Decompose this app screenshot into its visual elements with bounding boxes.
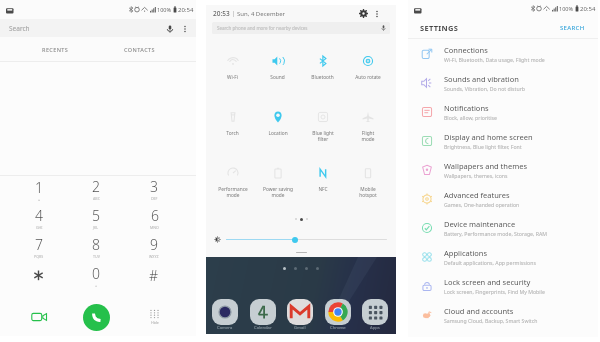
- button[interactable]: Bluetooth: [300, 48, 345, 104]
- button[interactable]: Apps: [362, 299, 388, 331]
- staticText: 8: [92, 235, 100, 254]
- button[interactable]: 5: [67, 204, 125, 233]
- staticText: #: [149, 266, 159, 285]
- staticText: NFC: [318, 186, 328, 193]
- button[interactable]: 4: [10, 204, 67, 233]
- staticText: Device maintenance: [444, 219, 516, 229]
- button[interactable]: RECENTS: [13, 37, 97, 61]
- staticText: Notifications: [444, 103, 489, 113]
- button[interactable]: 6: [125, 204, 183, 233]
- button[interactable]: Camera: [212, 299, 238, 331]
- button[interactable]: Display and home screen: [408, 126, 598, 155]
- staticText: Search phone and more for nearby devices: [217, 25, 308, 31]
- button[interactable]: Video call: [10, 298, 67, 336]
- staticText: 0: [92, 264, 100, 283]
- button[interactable]: Wallpapers and themes: [408, 155, 598, 184]
- staticText: +: [95, 283, 98, 288]
- staticText: Default applications, App permissions: [444, 259, 536, 266]
- staticText: Chrome: [330, 325, 346, 331]
- staticText: 4: [35, 206, 43, 225]
- staticText: 20:53: [213, 9, 230, 18]
- staticText: TUV: [93, 254, 100, 259]
- staticText: Display and home screen: [444, 132, 533, 142]
- staticText: SETTINGS: [420, 23, 459, 33]
- button[interactable]: CONTACTS: [97, 37, 182, 61]
- staticText: Sounds, Vibration, Do not disturb: [444, 85, 525, 92]
- button[interactable]: Chrome: [325, 299, 351, 331]
- button[interactable]: Performance mode: [210, 160, 255, 216]
- staticText: Samsung Cloud, Backup, Smart Switch: [444, 317, 538, 324]
- button[interactable]: Location: [255, 104, 300, 160]
- staticText: PQRS: [34, 254, 44, 259]
- staticText: Auto rotate: [355, 74, 381, 81]
- staticText: Mobile hotspot: [359, 186, 377, 198]
- button[interactable]: Connections: [408, 39, 598, 68]
- staticText: 20:54: [178, 6, 194, 14]
- button[interactable]: Call: [83, 304, 110, 331]
- button[interactable]: Advanced features: [408, 184, 598, 213]
- button[interactable]: Flight mode: [345, 104, 390, 160]
- staticText: Power saving mode: [263, 186, 293, 198]
- staticText: 5: [92, 206, 100, 225]
- staticText: 100%: [559, 5, 574, 12]
- button[interactable]: 3: [125, 176, 183, 204]
- button[interactable]: Voice search: [163, 22, 176, 35]
- staticText: SEARCH: [560, 24, 585, 32]
- button[interactable]: [10, 262, 67, 291]
- button[interactable]: Calendar: [250, 299, 276, 331]
- staticText: 3: [150, 177, 158, 196]
- button[interactable]: Auto rotate: [345, 48, 390, 104]
- staticText: ABC: [93, 196, 100, 201]
- button[interactable]: Mobile hotspot: [345, 160, 390, 216]
- staticText: 6: [151, 206, 159, 225]
- button[interactable]: #: [125, 262, 183, 291]
- staticText: 100%: [157, 6, 172, 13]
- staticText: Hide: [151, 320, 159, 325]
- staticText: Sound: [270, 74, 285, 81]
- button[interactable]: Blue light filter: [300, 104, 345, 160]
- button[interactable]: Search: [0, 19, 196, 37]
- staticText: WXYZ: [149, 254, 159, 259]
- staticText: Advanced features: [444, 190, 510, 200]
- button[interactable]: Torch: [210, 104, 255, 160]
- staticText: Search: [9, 24, 30, 33]
- button[interactable]: Device maintenance: [408, 213, 598, 242]
- button[interactable]: 2: [67, 176, 125, 204]
- staticText: Torch: [226, 130, 239, 137]
- staticText: Wallpapers, themes, icons: [444, 172, 508, 179]
- button[interactable]: NFC: [300, 160, 345, 216]
- button[interactable]: Power saving mode: [255, 160, 300, 216]
- button[interactable]: Applications: [408, 242, 598, 271]
- button[interactable]: 9: [125, 233, 183, 262]
- staticText: DEF: [151, 196, 158, 201]
- staticText: Location: [268, 130, 288, 137]
- button[interactable]: 1: [10, 176, 67, 204]
- button[interactable]: Settings: [357, 7, 370, 20]
- button[interactable]: Lock screen and security: [408, 271, 598, 300]
- staticText: Apps: [370, 325, 380, 331]
- staticText: Block, allow, prioritise: [444, 114, 497, 121]
- button[interactable]: Sounds and vibration: [408, 68, 598, 97]
- button[interactable]: SEARCH: [559, 22, 586, 34]
- button[interactable]: Wi-Fi: [210, 48, 255, 104]
- button[interactable]: Hide keypad: [125, 298, 183, 336]
- staticText: Brightness, Blue light filter, Font: [444, 143, 522, 150]
- button[interactable]: Cloud and accounts: [408, 300, 598, 329]
- button[interactable]: Notifications: [408, 97, 598, 126]
- staticText: Gmail: [294, 325, 306, 331]
- button[interactable]: 8: [67, 233, 125, 262]
- staticText: Cloud and accounts: [444, 306, 514, 316]
- staticText: 9: [150, 235, 158, 254]
- button[interactable]: Search phone and more for nearby devices: [212, 22, 390, 34]
- button[interactable]: More options: [371, 8, 382, 19]
- button[interactable]: Gmail: [287, 299, 313, 331]
- button[interactable]: More options: [178, 22, 191, 35]
- staticText: GHI: [36, 225, 43, 230]
- button[interactable]: Sound: [255, 48, 300, 104]
- staticText: 1: [35, 178, 43, 197]
- staticText: Sun, 4 December: [237, 10, 286, 18]
- staticText: Wi-Fi, Bluetooth, Data usage, Flight mod…: [444, 56, 545, 63]
- button[interactable]: 7: [10, 233, 67, 262]
- staticText: Games, One-handed operation: [444, 201, 520, 208]
- button[interactable]: 0: [67, 262, 125, 291]
